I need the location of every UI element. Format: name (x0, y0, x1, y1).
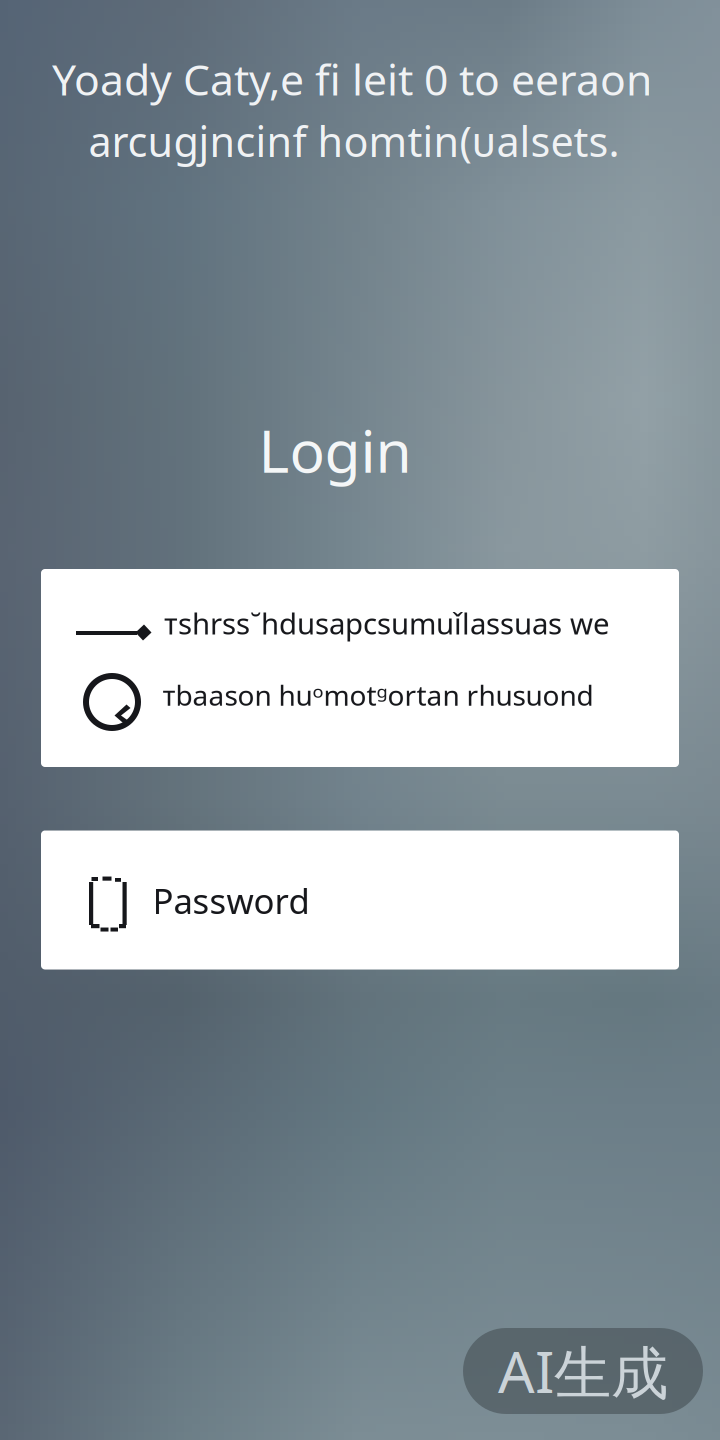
staticText: ᴛshrss˘hdusapcsumuǐlassuas we (164, 603, 610, 642)
staticText: AI生成 (498, 1333, 668, 1409)
staticText: arcugjncinf homtin(ᴜalsets. (88, 114, 619, 168)
button[interactable]: Password field (41, 830, 679, 969)
staticText: Password (152, 877, 309, 923)
staticText: ᴛbaason huᵒmotᵍortan rhusuond (162, 676, 593, 714)
button[interactable]: Email or username field (41, 569, 679, 668)
staticText: Yoady Caty,e fi leit 0 to eeraon (52, 51, 652, 107)
staticText: Login (258, 411, 411, 489)
button[interactable]: Account field (41, 668, 679, 767)
